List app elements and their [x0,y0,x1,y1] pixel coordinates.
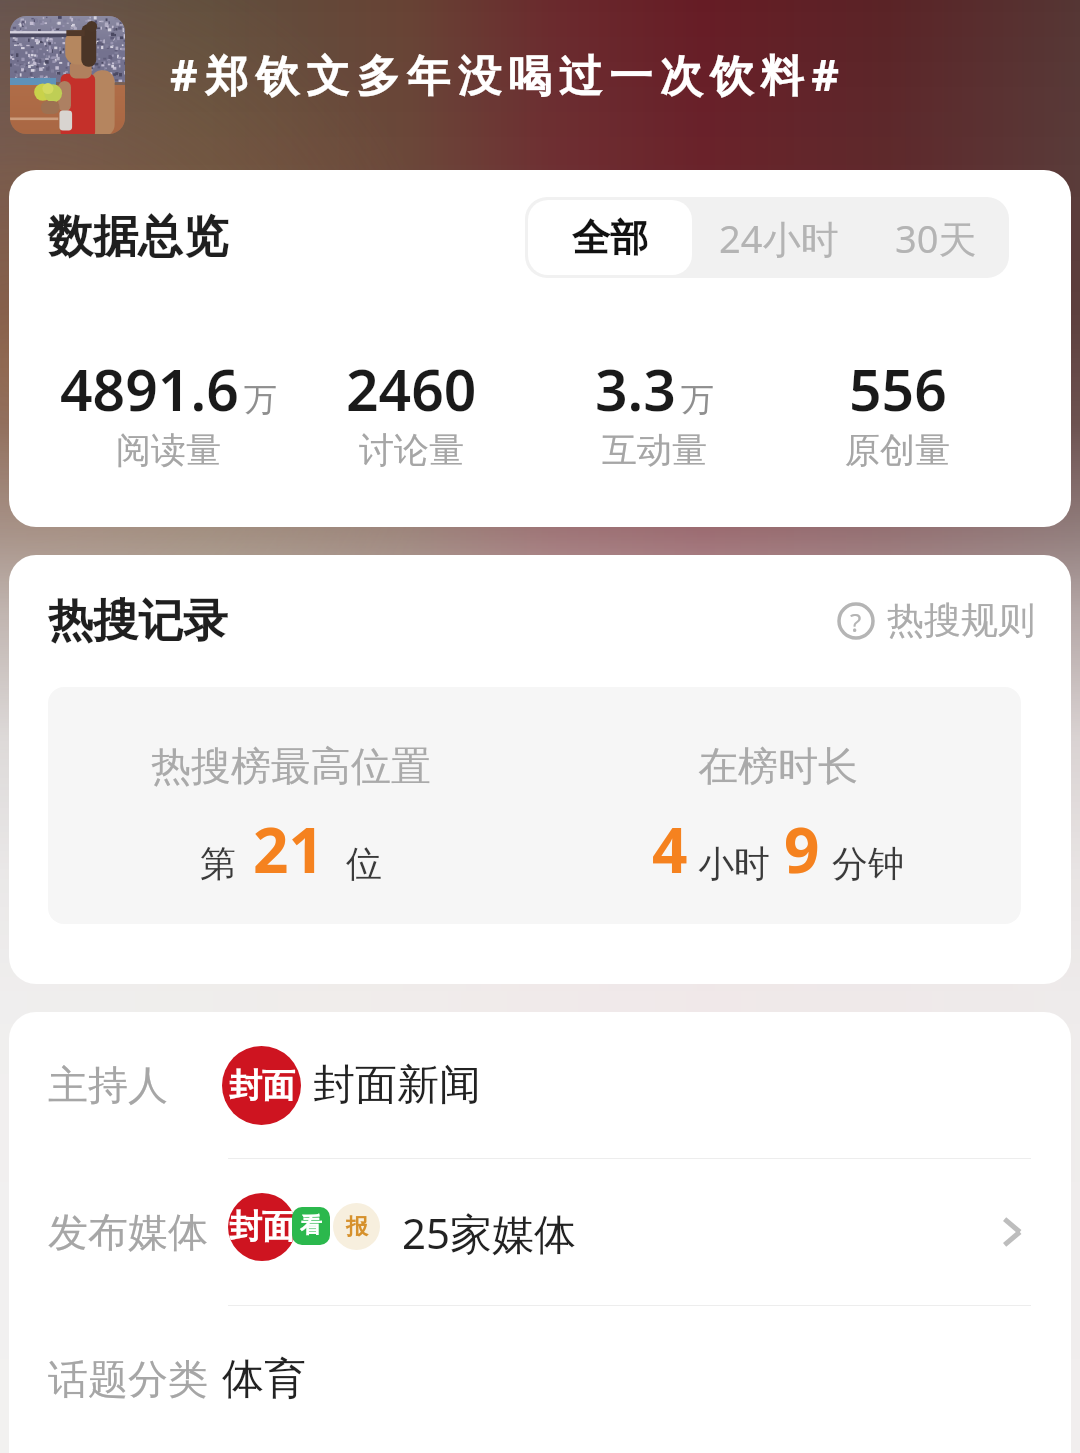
staticText: #郑钦文多年没喝过一次饮料# [170,45,847,104]
staticText: 4891.6 [60,350,239,428]
button[interactable]: 热搜规则 [837,597,1035,644]
staticText: 封面 [229,1206,295,1248]
staticText: 数据总览 [48,209,228,266]
staticText: 30天 [895,212,977,264]
staticText: 原创量 [845,428,950,472]
staticText: ? [850,604,862,639]
staticText: 主持人 [48,1060,168,1110]
button[interactable]: 30天 [866,200,1006,275]
staticText: 25家媒体 [402,1204,577,1261]
staticText: 位 [346,841,382,886]
staticText: 4 [652,807,688,891]
staticText: 9 [784,807,820,891]
staticText: 万 [244,379,277,421]
staticText: 阅读量 [116,428,221,472]
staticText: 热搜记录 [48,593,228,650]
staticText: 24小时 [719,212,839,264]
staticText: 体育 [222,1353,306,1406]
staticText: 分钟 [832,841,904,886]
button[interactable]: 话题封面图 [10,16,125,134]
staticText: 话题分类 [48,1354,208,1404]
staticText: 封面 [229,1065,295,1107]
staticText: 3.3 [595,350,676,428]
button[interactable]: 发布媒体 [9,1159,1071,1305]
button[interactable]: 主持人 [9,1012,1071,1158]
staticText: 发布媒体 [48,1207,208,1257]
staticText: 556 [849,350,947,428]
staticText: 热搜榜最高位置 [151,741,431,791]
staticText: 万 [681,379,714,421]
staticText: 在榜时长 [698,741,858,791]
staticText: 封面新闻 [313,1059,481,1112]
button[interactable]: 全部 [528,200,692,275]
staticText: 热搜规则 [887,597,1035,644]
staticText: 看 [300,1212,322,1240]
staticText: 21 [253,807,324,891]
staticText: 小时 [698,841,770,886]
button[interactable]: 话题分类 [9,1306,1071,1452]
staticText: 全部 [572,214,648,262]
staticText: 报 [346,1213,368,1241]
staticText: 2460 [346,350,477,428]
staticText: 第 [200,841,236,886]
button[interactable]: 话题封面图 [0,0,1080,170]
button[interactable]: 24小时 [698,200,860,275]
staticText: 讨论量 [359,428,464,472]
staticText: 互动量 [602,428,707,472]
